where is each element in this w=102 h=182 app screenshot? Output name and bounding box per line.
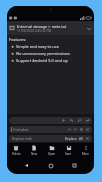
button[interactable]: Clear <box>85 127 90 132</box>
button[interactable]: Open file <box>9 25 15 31</box>
staticText: New <box>31 152 37 156</box>
button[interactable]: Open <box>43 143 60 157</box>
staticText: Replace with <box>12 136 33 141</box>
staticText: ★ <box>11 59 15 63</box>
staticText: Save <box>65 152 72 156</box>
staticText: More <box>82 152 89 156</box>
button[interactable]: Home <box>46 161 55 170</box>
button[interactable]: Redo <box>77 118 82 123</box>
button[interactable]: More <box>77 143 94 157</box>
button[interactable]: Previous <box>67 127 72 132</box>
button[interactable]: Enter <box>85 118 90 123</box>
button[interactable]: Save <box>60 143 77 157</box>
button[interactable]: All <box>79 137 83 141</box>
button[interactable]: Next <box>73 127 78 132</box>
button[interactable]: More options <box>85 25 92 32</box>
staticText: Support Android 5.0 and up <box>16 58 68 63</box>
button[interactable]: Undo <box>69 118 74 123</box>
staticText: ★ <box>11 52 15 56</box>
staticText: ★ <box>11 45 15 49</box>
staticText: Simple and easy to use <box>16 44 60 49</box>
staticText: Features: <box>9 37 27 42</box>
staticText: Find what <box>13 127 29 132</box>
staticText: Open <box>48 152 56 156</box>
button[interactable]: Delete <box>7 143 25 157</box>
button[interactable]: Case sensitive <box>79 127 84 132</box>
staticText: Delete <box>12 152 21 156</box>
staticText: 11/06/2020 4:45:32 PM <box>17 29 52 33</box>
staticText: Internal storage > note.txt <box>17 24 67 29</box>
button[interactable]: Close <box>85 136 90 141</box>
staticText: No unnecessary permissions <box>16 51 70 56</box>
button[interactable]: New <box>25 143 43 157</box>
button[interactable]: Replace <box>65 137 77 141</box>
button[interactable]: Back <box>22 161 31 170</box>
button[interactable]: Recent apps <box>70 161 79 170</box>
button[interactable]: Preview <box>61 118 66 123</box>
